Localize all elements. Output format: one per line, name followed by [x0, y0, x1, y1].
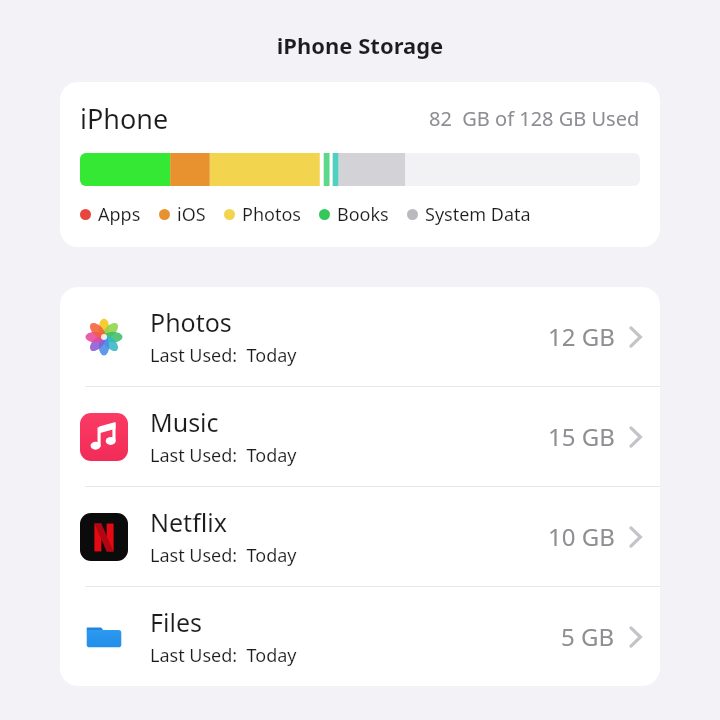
button[interactable]: Music — [60, 387, 660, 486]
staticText: iPhone — [80, 100, 169, 137]
staticText: Apps — [98, 202, 141, 227]
staticText: 15 GB — [548, 420, 615, 453]
staticText: iPhone Storage — [0, 30, 720, 60]
button[interactable]: Photos — [60, 287, 660, 386]
staticText: Last Used: Today — [150, 443, 297, 468]
staticText: 82 GB of 128 GB Used — [429, 105, 640, 132]
other: Open Files details — [629, 625, 642, 649]
other: Open Music details — [629, 425, 642, 449]
staticText: System Data — [425, 202, 531, 227]
staticText: Books — [337, 202, 389, 227]
staticText: 10 GB — [548, 520, 615, 553]
staticText: Music — [150, 405, 219, 439]
staticText: 5 GB — [561, 620, 615, 653]
staticText: iOS — [177, 202, 206, 227]
staticText: Last Used: Today — [150, 643, 297, 668]
staticText: Last Used: Today — [150, 343, 297, 368]
other: Open Photos details — [629, 325, 642, 349]
staticText: Last Used: Today — [150, 543, 297, 568]
button[interactable]: Netflix — [60, 487, 660, 586]
staticText: Photos — [242, 202, 301, 227]
staticText: Files — [150, 605, 202, 639]
button[interactable]: Files — [60, 587, 660, 686]
staticText: Photos — [150, 305, 232, 339]
other: Open Netflix details — [629, 525, 642, 549]
staticText: Netflix — [150, 505, 227, 539]
staticText: 12 GB — [548, 320, 615, 353]
